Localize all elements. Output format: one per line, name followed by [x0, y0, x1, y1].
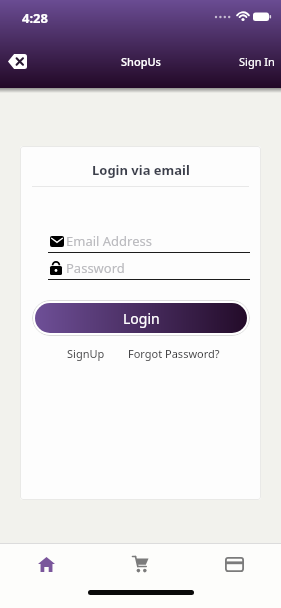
staticText: Email Address [66, 232, 152, 250]
staticText: Sign In [239, 54, 275, 69]
button[interactable]: Password [48, 253, 250, 280]
staticText: 4:28 [22, 9, 48, 27]
staticText: SignUp [67, 346, 105, 361]
staticText: Login via email [92, 161, 190, 179]
staticText: Forgot Password? [128, 346, 220, 361]
staticText: Password [66, 259, 125, 277]
staticText: ShopUs [121, 54, 161, 69]
button[interactable] [187, 544, 281, 584]
button[interactable]: Sign In [236, 50, 278, 72]
button[interactable]: Email Address [48, 226, 250, 253]
button[interactable]: Forgot Password? [128, 342, 220, 364]
button[interactable]: SignUp [58, 342, 114, 364]
button[interactable] [0, 544, 93, 584]
staticText: Login [123, 309, 160, 328]
button[interactable] [8, 50, 36, 72]
button[interactable]: Login [35, 303, 247, 333]
button[interactable] [93, 544, 187, 584]
